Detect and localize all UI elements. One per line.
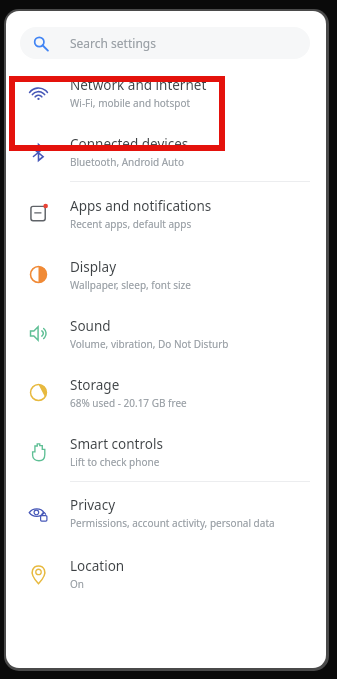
staticText: Sound xyxy=(70,317,111,335)
staticText: Permissions, account activity, personal … xyxy=(70,516,275,530)
button[interactable]: Network and internet xyxy=(6,63,326,123)
staticText: Wallpaper, sleep, font size xyxy=(70,278,191,292)
staticText: On xyxy=(70,577,84,591)
staticText: Recent apps, default apps xyxy=(70,217,192,231)
other: Search xyxy=(33,36,48,51)
button[interactable]: Search xyxy=(20,27,310,59)
staticText: Privacy xyxy=(70,496,116,514)
staticText: Lift to check phone xyxy=(70,455,160,469)
button[interactable]: Privacy xyxy=(6,482,326,544)
staticText: Location xyxy=(70,557,125,575)
button[interactable]: Connected devices xyxy=(6,123,326,181)
button[interactable]: Smart controls xyxy=(6,422,326,481)
staticText: Volume, vibration, Do Not Disturb xyxy=(70,337,229,351)
button[interactable]: Location xyxy=(6,544,326,604)
staticText: Connected devices xyxy=(70,135,189,153)
staticText: Smart controls xyxy=(70,435,163,453)
staticText: Display xyxy=(70,258,117,276)
button[interactable]: Display xyxy=(6,245,326,304)
staticText: Wi-Fi, mobile and hotspot xyxy=(70,96,191,110)
staticText: Storage xyxy=(70,376,120,394)
button[interactable]: Storage xyxy=(6,363,326,422)
staticText: Network and internet xyxy=(70,76,207,94)
staticText: Apps and notifications xyxy=(70,197,212,215)
staticText: Bluetooth, Android Auto xyxy=(70,155,184,169)
button[interactable]: Apps and notifications xyxy=(6,182,326,245)
staticText: 68% used - 20.17 GB free xyxy=(70,396,187,410)
staticText: Search settings xyxy=(70,35,156,51)
button[interactable]: Sound xyxy=(6,304,326,363)
